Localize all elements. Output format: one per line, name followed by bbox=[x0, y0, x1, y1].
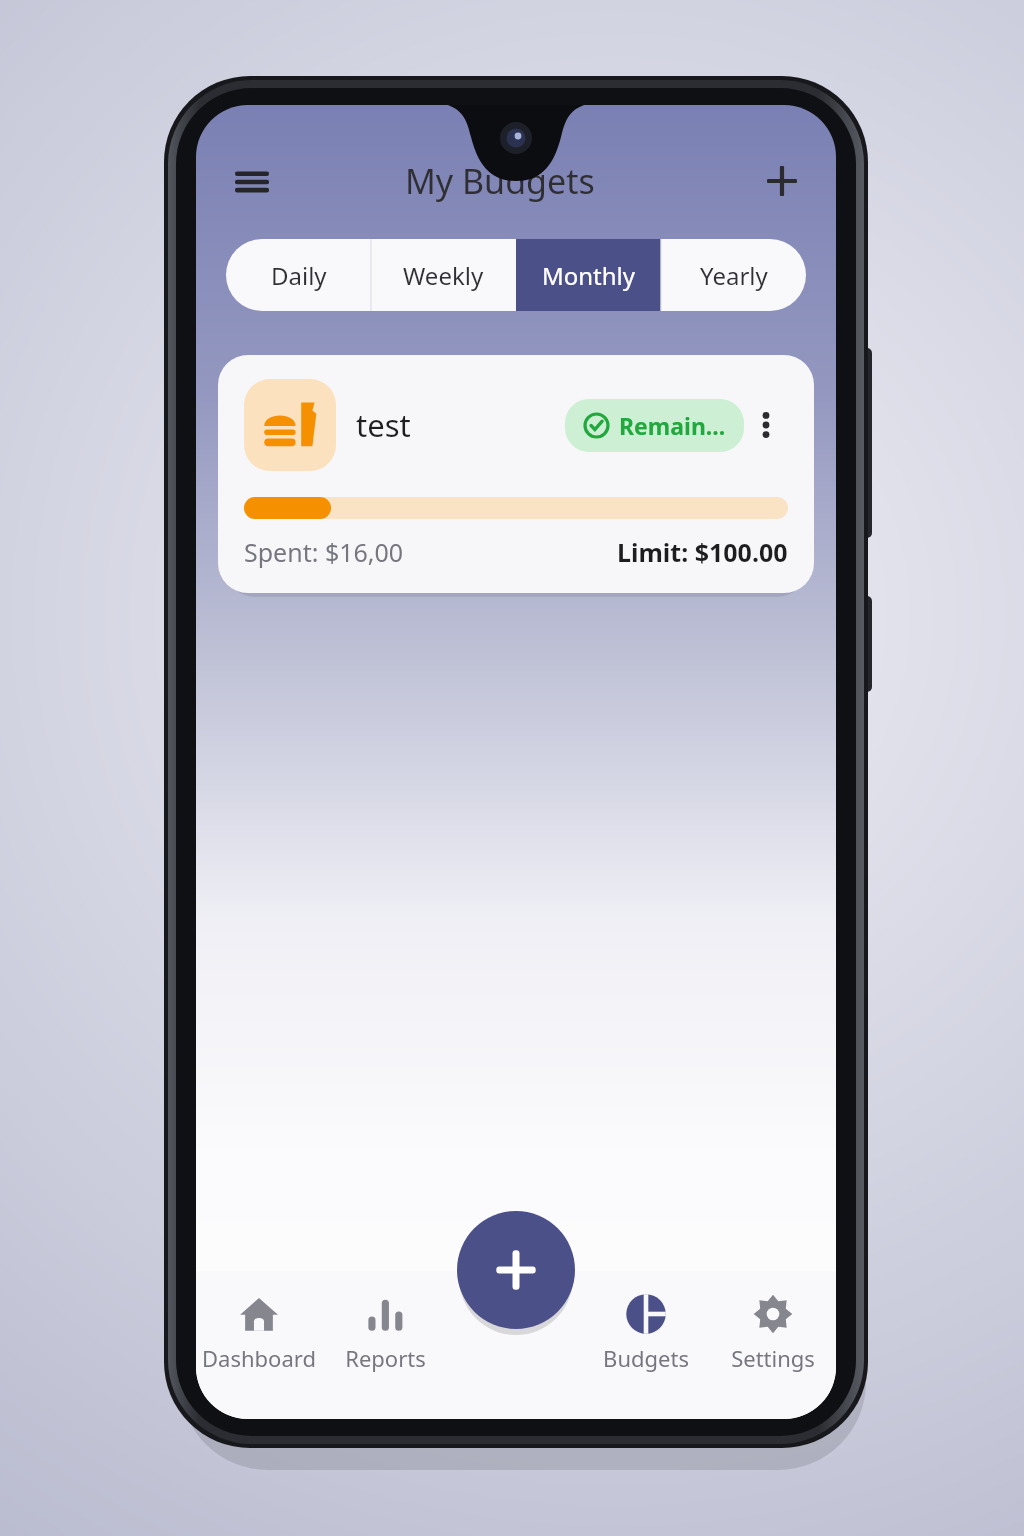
button[interactable]: Add budget bbox=[758, 157, 806, 205]
staticText: Remain... bbox=[619, 410, 726, 441]
button[interactable]: test bbox=[218, 355, 814, 593]
button[interactable]: Weekly bbox=[371, 239, 516, 311]
staticText: Spent: $16,00 bbox=[244, 535, 404, 569]
staticText: Yearly bbox=[700, 259, 768, 292]
button[interactable]: Yearly bbox=[661, 239, 806, 311]
staticText: Daily bbox=[271, 259, 327, 292]
staticText: Limit: $100.00 bbox=[617, 535, 788, 569]
staticText: Monthly bbox=[542, 259, 636, 292]
button[interactable]: Menu bbox=[228, 157, 276, 205]
button[interactable]: Reports bbox=[322, 1285, 449, 1419]
button[interactable]: Monthly bbox=[516, 239, 661, 311]
staticText: Dashboard bbox=[202, 1343, 316, 1373]
staticText: test bbox=[356, 404, 411, 446]
button[interactable]: Daily bbox=[226, 239, 371, 311]
staticText: Budgets bbox=[603, 1343, 689, 1373]
button[interactable]: Remain... bbox=[565, 399, 744, 452]
staticText: Weekly bbox=[403, 259, 484, 292]
button[interactable]: Settings bbox=[709, 1285, 836, 1419]
button[interactable]: Budgets bbox=[582, 1285, 709, 1419]
staticText: My Budgets bbox=[405, 158, 595, 204]
button[interactable]: More options bbox=[744, 403, 788, 447]
button[interactable]: Dashboard bbox=[196, 1285, 322, 1419]
staticText: Reports bbox=[345, 1343, 426, 1373]
staticText: Settings bbox=[731, 1343, 815, 1373]
button[interactable]: Add bbox=[457, 1211, 575, 1329]
